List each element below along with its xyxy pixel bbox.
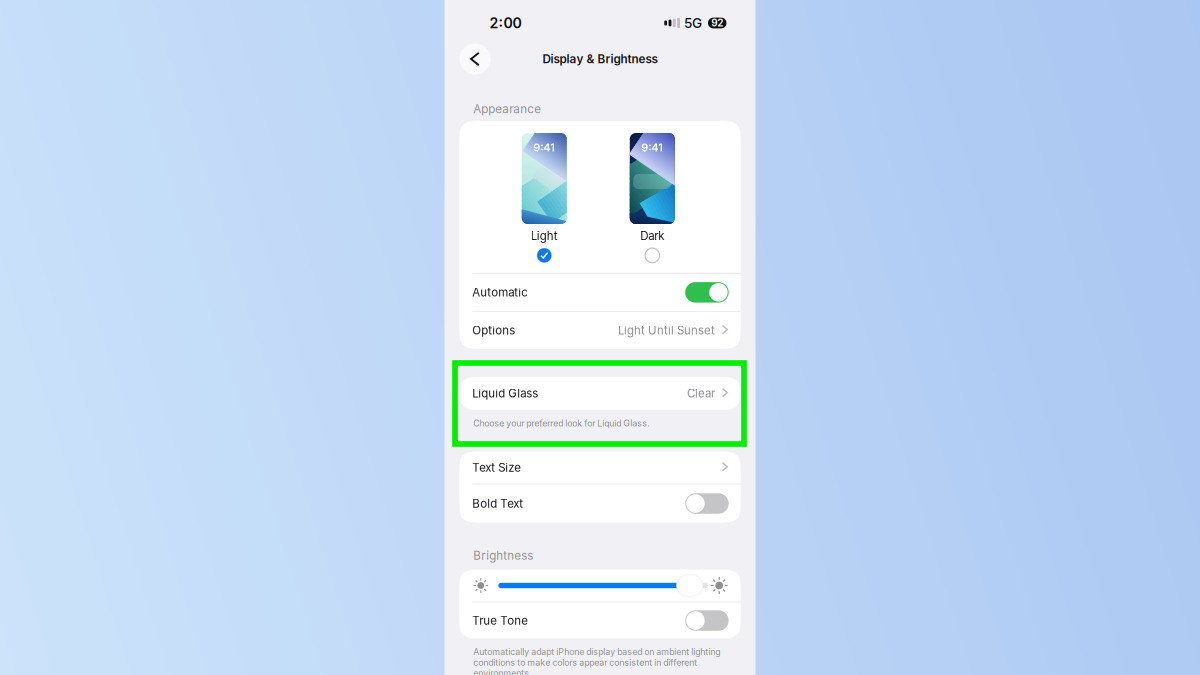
button[interactable]: True Tone <box>459 602 741 638</box>
staticText: Bold Text <box>472 497 523 510</box>
staticText: Light <box>531 229 558 243</box>
button[interactable]: 9:41 <box>630 133 675 263</box>
staticText: 5G <box>684 15 702 31</box>
staticText: Options <box>472 323 515 337</box>
staticText: 9:41 <box>533 141 555 154</box>
staticText: Display & Brightness <box>542 52 657 66</box>
staticText: Text Size <box>472 461 521 474</box>
staticText: Clear <box>687 386 715 400</box>
staticText: Liquid Glass <box>472 386 538 400</box>
button[interactable]: Back <box>459 43 490 74</box>
button[interactable]: Text Size <box>459 451 741 483</box>
button[interactable]: Liquid Glass <box>459 377 741 410</box>
staticText: Brightness <box>473 548 533 562</box>
staticText: True Tone <box>472 614 528 627</box>
staticText: Light Until Sunset <box>618 323 715 337</box>
staticText: Choose your preferred look for Liquid Gl… <box>473 418 650 428</box>
staticText: Automatically adapt iPhone display based… <box>473 646 720 675</box>
staticText: Dark <box>640 229 664 243</box>
button[interactable]: Automatic <box>459 274 741 311</box>
staticText: Automatic <box>472 285 528 299</box>
staticText: 92 <box>711 17 723 29</box>
button[interactable]: Bold Text <box>459 484 741 522</box>
staticText: 9:41 <box>641 141 663 154</box>
staticText: 2:00 <box>489 14 521 31</box>
staticText: Appearance <box>473 102 541 116</box>
button[interactable]: Options <box>459 312 741 349</box>
button[interactable]: 9:41 <box>522 133 567 263</box>
